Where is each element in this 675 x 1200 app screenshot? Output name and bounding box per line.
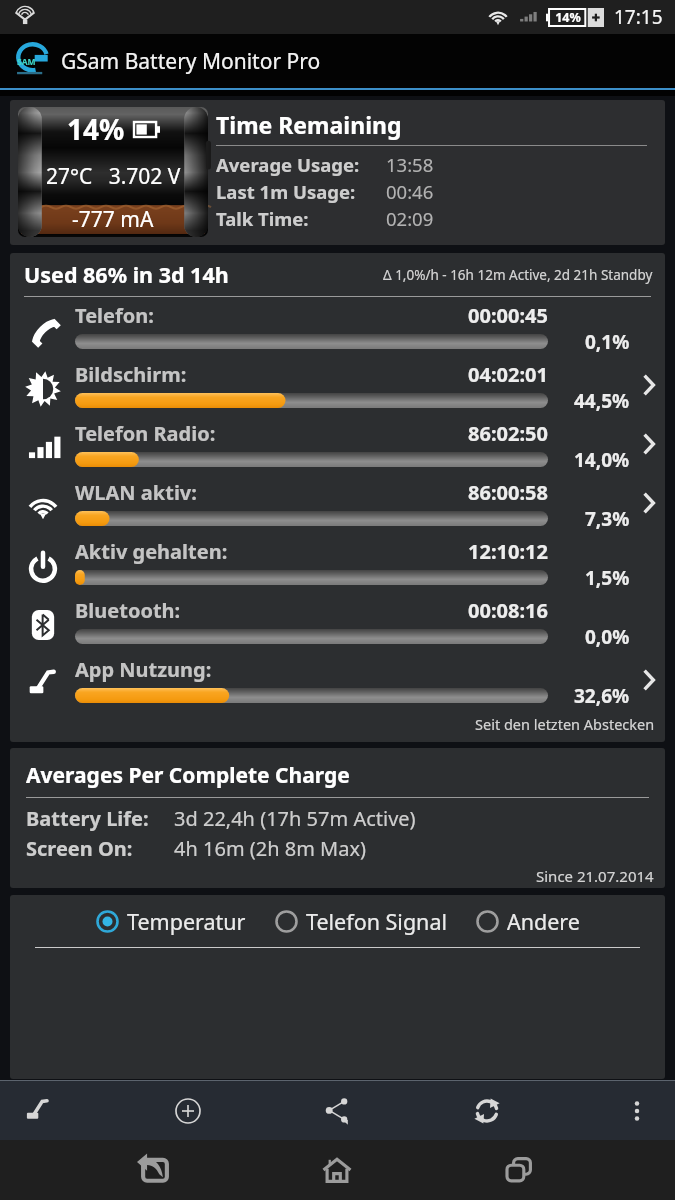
button[interactable]: Andere: [476, 907, 580, 936]
staticText: 12:10:12: [468, 538, 548, 565]
staticText: -777 mA: [72, 205, 154, 234]
button[interactable]: Telefon Radio:: [10, 418, 665, 477]
staticText: Seit den letzten Abstecken: [475, 714, 655, 734]
staticText: 14%: [67, 110, 125, 148]
staticText: Battery Life:: [26, 805, 149, 832]
button[interactable]: Telefon:: [10, 300, 665, 359]
staticText: Talk Time:: [216, 206, 309, 231]
staticText: Bluetooth:: [75, 597, 181, 624]
button[interactable]: Bildschirm:: [10, 359, 665, 418]
button[interactable]: Bluetooth:: [10, 595, 665, 654]
staticText: 02:09: [386, 206, 434, 231]
button[interactable]: Home: [292, 1140, 382, 1200]
staticText: Average Usage:: [216, 152, 360, 177]
staticText: Since 21.07.2014: [536, 866, 654, 886]
staticText: 86:02:50: [468, 420, 548, 447]
staticText: 44,5%: [574, 388, 630, 414]
staticText: 27°C 3.702 V: [46, 162, 181, 191]
staticText: Andere: [507, 907, 580, 936]
staticText: WLAN aktiv:: [75, 479, 197, 506]
staticText: 4h 16m (2h 8m Max): [174, 835, 367, 862]
staticText: Telefon Signal: [306, 907, 447, 936]
staticText: Screen On:: [26, 835, 133, 862]
staticText: 86:00:58: [468, 479, 548, 506]
button[interactable]: More options: [600, 1081, 674, 1140]
staticText: Aktiv gehalten:: [75, 538, 228, 565]
button[interactable]: App usage: [1, 1081, 75, 1140]
staticText: Time Remaining: [216, 109, 402, 140]
button[interactable]: WLAN aktiv:: [10, 477, 665, 536]
staticText: 14,0%: [574, 447, 630, 473]
staticText: 0,0%: [585, 624, 630, 650]
button[interactable]: App Nutzung:: [10, 654, 665, 713]
staticText: 14%: [548, 9, 588, 26]
staticText: Averages Per Complete Charge: [26, 761, 350, 790]
staticText: Used 86% in 3d 14h: [24, 260, 229, 289]
staticText: Telefon Radio:: [75, 420, 216, 447]
staticText: 32,6%: [574, 683, 630, 709]
staticText: 04:02:01: [468, 361, 548, 388]
staticText: GSam Battery Monitor Pro: [61, 47, 321, 76]
button[interactable]: Aktiv gehalten:: [10, 536, 665, 595]
staticText: 3d 22,4h (17h 57m Active): [174, 805, 416, 832]
staticText: 00:46: [386, 179, 434, 204]
button[interactable]: Back: [110, 1140, 200, 1200]
staticText: 13:58: [386, 152, 434, 177]
button[interactable]: Share: [300, 1081, 374, 1140]
staticText: 7,3%: [585, 506, 630, 532]
button[interactable]: Temperatur: [96, 907, 246, 936]
staticText: Temperatur: [127, 907, 246, 936]
staticText: SAM: [17, 56, 36, 68]
staticText: Bildschirm:: [75, 361, 187, 388]
staticText: 1,5%: [585, 565, 630, 591]
staticText: Telefon:: [75, 302, 154, 329]
staticText: 0,1%: [585, 329, 630, 355]
staticText: 00:08:16: [468, 597, 548, 624]
staticText: 00:00:45: [468, 302, 548, 329]
staticText: Last 1m Usage:: [216, 179, 356, 204]
button[interactable]: Recent apps: [474, 1140, 564, 1200]
button[interactable]: Telefon Signal: [275, 907, 447, 936]
staticText: 17:15: [614, 4, 663, 30]
staticText: Δ 1,0%/h - 16h 12m Active, 2d 21h Standb…: [383, 266, 653, 284]
button[interactable]: Refresh: [450, 1081, 524, 1140]
button[interactable]: Add: [151, 1081, 225, 1140]
staticText: App Nutzung:: [75, 656, 212, 683]
